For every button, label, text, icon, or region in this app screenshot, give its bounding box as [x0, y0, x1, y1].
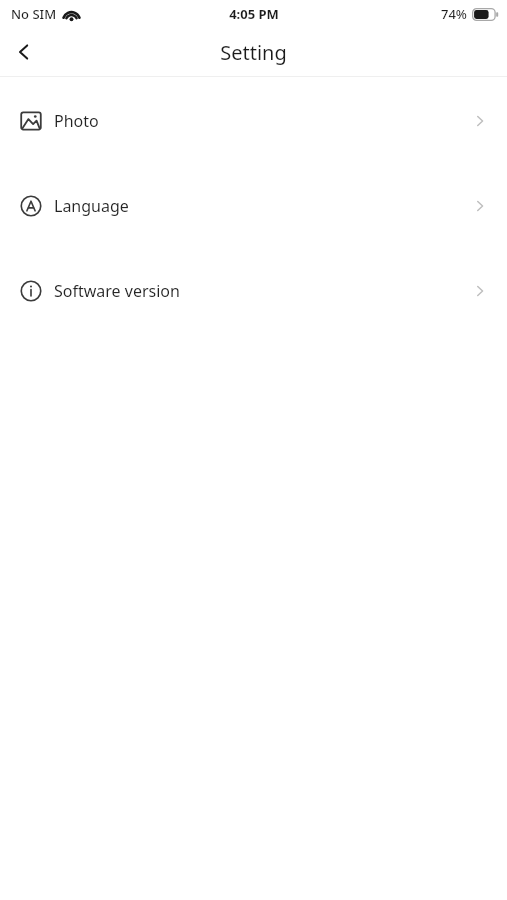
button[interactable]: Language: [0, 184, 507, 228]
staticText: 4:05 PM: [229, 5, 279, 23]
button[interactable]: Back: [0, 28, 48, 76]
button[interactable]: Software version: [0, 269, 507, 313]
staticText: 74%: [441, 5, 467, 23]
staticText: Setting: [220, 39, 287, 66]
staticText: Photo: [54, 110, 99, 132]
staticText: Language: [54, 195, 129, 217]
staticText: No SIM: [11, 5, 57, 23]
button[interactable]: Photo: [0, 99, 507, 143]
staticText: Software version: [54, 280, 180, 302]
